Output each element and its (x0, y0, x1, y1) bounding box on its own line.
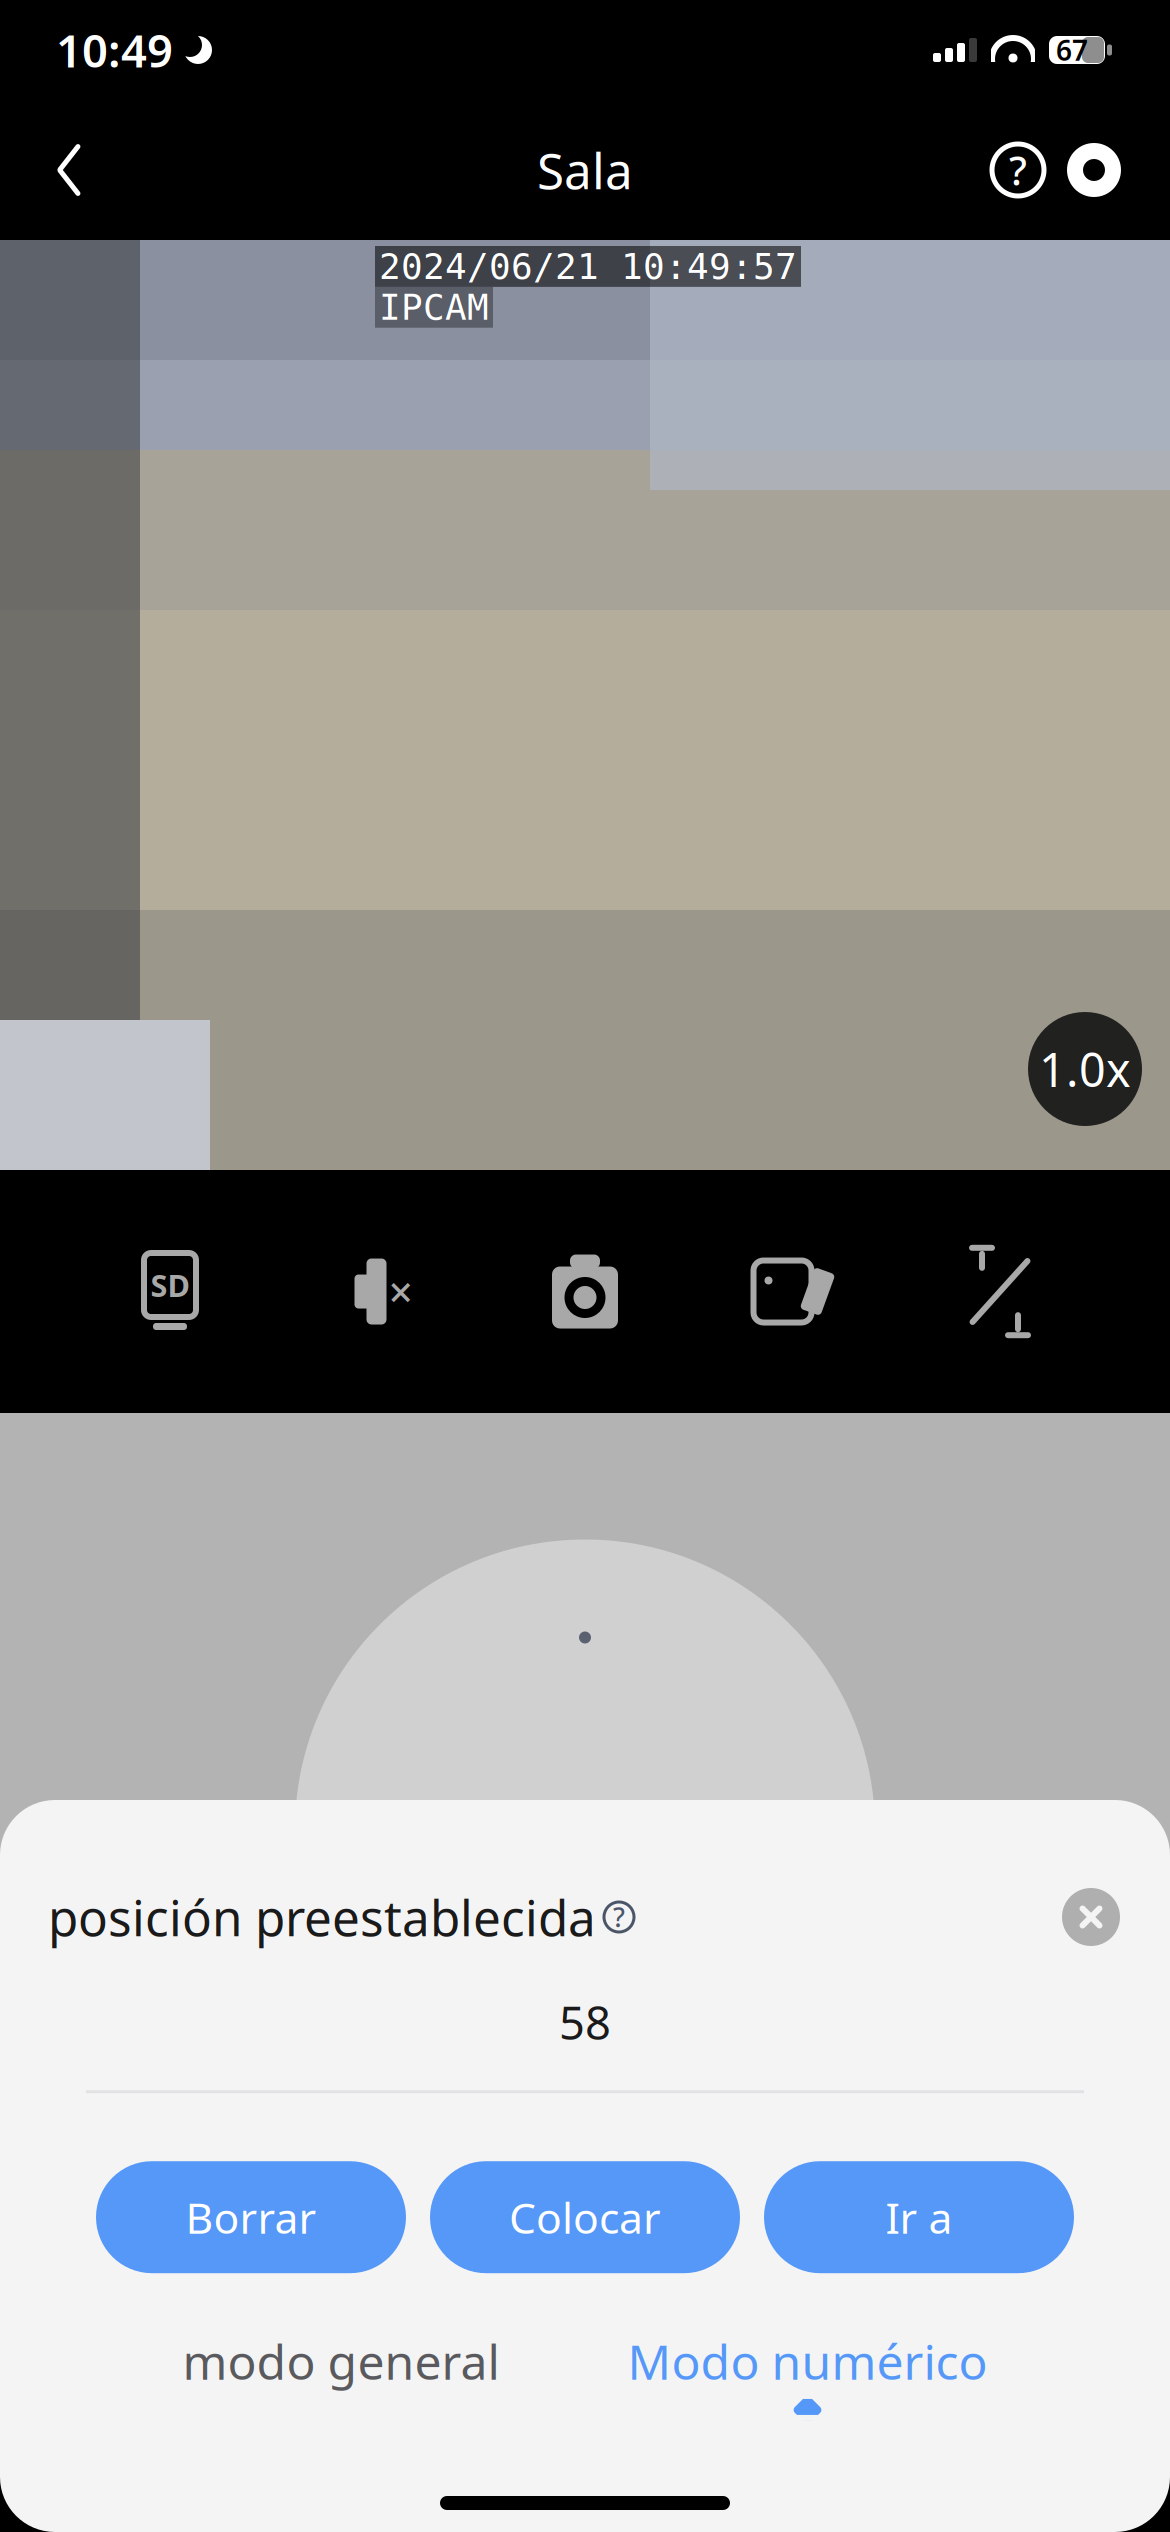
staticText: 58 (559, 1992, 611, 2052)
staticText: 67 (1056, 31, 1088, 69)
button[interactable]: Preset position help (596, 1894, 642, 1940)
staticText: posición preestablecida (48, 1884, 596, 1950)
staticText: SD (150, 1265, 189, 1305)
staticText: 1.0x (1039, 1038, 1131, 1100)
button[interactable]: Close (1056, 1882, 1126, 1952)
button[interactable]: modo general (166, 2329, 515, 2421)
staticText: ? (1009, 143, 1027, 196)
staticText: Sala (537, 137, 633, 203)
staticText: ? (613, 1899, 625, 1935)
staticText: IPCAM (379, 287, 489, 328)
staticText: modo general (182, 2329, 499, 2393)
button[interactable]: Back (34, 132, 104, 208)
button[interactable]: Stream quality SD (110, 1236, 230, 1346)
button[interactable]: Ir a (764, 2161, 1074, 2273)
staticText: 10:49 (56, 20, 173, 80)
button[interactable]: Full screen (940, 1236, 1060, 1346)
button[interactable]: Snapshot (525, 1236, 645, 1346)
staticText: × (388, 1263, 412, 1320)
button[interactable]: Mute (317, 1236, 437, 1346)
staticText: Modo numérico (627, 2329, 987, 2393)
staticText: Colocar (509, 2189, 661, 2246)
staticText: 2024/06/21 10:49:57 (379, 246, 797, 287)
button[interactable]: Modo numérico (611, 2329, 1003, 2421)
button[interactable]: Colocar (430, 2161, 740, 2273)
button[interactable]: 1.0x (1028, 1012, 1142, 1126)
staticText: Ir a (885, 2189, 952, 2246)
staticText: Borrar (185, 2189, 316, 2246)
button[interactable]: Settings (1056, 132, 1132, 208)
button[interactable]: Borrar (96, 2161, 406, 2273)
button[interactable]: Help (980, 132, 1056, 208)
button[interactable]: Record video (732, 1236, 852, 1346)
